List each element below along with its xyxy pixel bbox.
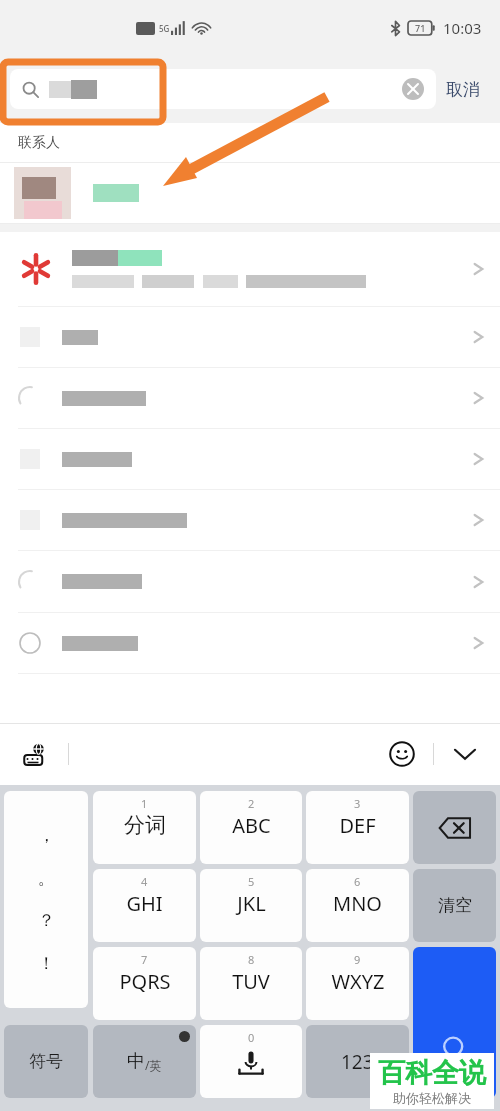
button[interactable]: 9 — [306, 947, 409, 1020]
staticText: /英 — [145, 1057, 162, 1073]
button[interactable] — [0, 232, 500, 306]
button[interactable] — [0, 163, 500, 223]
button[interactable]: Search — [413, 947, 496, 1098]
button[interactable]: 4 — [93, 869, 196, 942]
button[interactable]: 0 — [200, 1025, 302, 1098]
staticText: 2 — [248, 796, 255, 811]
staticText: TUV — [232, 968, 270, 995]
button[interactable]: 符号 — [4, 1025, 88, 1098]
button[interactable]: 8 — [200, 947, 302, 1020]
button[interactable]: Hide keyboard — [448, 737, 482, 771]
button[interactable] — [0, 429, 500, 489]
staticText: 清空 — [438, 895, 472, 916]
staticText: PQRS — [119, 968, 171, 995]
staticText: 百科全说 — [378, 1056, 486, 1090]
button[interactable] — [0, 307, 500, 367]
staticText: 符号 — [29, 1051, 63, 1072]
staticText: 8 — [248, 952, 255, 967]
staticText: 联系人 — [18, 134, 60, 152]
button[interactable]: Clear — [402, 78, 424, 100]
button[interactable]: 清空 — [413, 869, 496, 942]
button[interactable]: 123 — [306, 1025, 409, 1098]
staticText: 71 — [415, 22, 426, 34]
staticText: MNO — [333, 890, 382, 917]
staticText: ？ — [38, 910, 55, 931]
staticText: 助你轻松解决 — [393, 1090, 471, 1106]
staticText: 取消 — [446, 79, 480, 100]
staticText: 中 — [127, 1050, 145, 1073]
staticText: JKL — [237, 890, 266, 917]
button[interactable]: Input method — [18, 737, 52, 771]
button[interactable] — [0, 551, 500, 612]
button[interactable]: Clear — [10, 69, 436, 109]
staticText: 3 — [354, 796, 361, 811]
button[interactable] — [0, 368, 500, 428]
staticText: ABC — [232, 812, 271, 839]
button[interactable]: 2 — [200, 791, 302, 864]
button[interactable]: 7 — [93, 947, 196, 1020]
staticText: 0 — [248, 1030, 255, 1045]
staticText: 。 — [38, 868, 55, 889]
button[interactable] — [0, 613, 500, 673]
staticText: 1 — [141, 796, 148, 811]
staticText: ， — [38, 825, 55, 846]
staticText: 4 — [141, 874, 148, 889]
button[interactable]: 3 — [306, 791, 409, 864]
staticText: 9 — [354, 952, 361, 967]
staticText: 6 — [354, 874, 361, 889]
staticText: ！ — [38, 953, 55, 974]
button[interactable]: ， — [4, 791, 88, 1008]
button[interactable]: 6 — [306, 869, 409, 942]
staticText: 5 — [248, 874, 255, 889]
button[interactable]: 中 — [93, 1025, 196, 1098]
staticText: WXYZ — [331, 968, 385, 995]
staticText: 分词 — [124, 812, 166, 838]
button[interactable] — [0, 490, 500, 550]
staticText: 10:03 — [443, 18, 482, 38]
staticText: 123 — [341, 1049, 374, 1075]
button[interactable]: 取消 — [436, 73, 490, 106]
button[interactable]: Emoji — [385, 737, 419, 771]
button[interactable]: Backspace — [413, 791, 496, 864]
button[interactable]: 5 — [200, 869, 302, 942]
staticText: DEF — [339, 812, 376, 839]
staticText: GHI — [126, 890, 163, 917]
staticText: 5G — [159, 23, 170, 34]
button[interactable]: 1 — [93, 791, 196, 864]
staticText: 7 — [141, 952, 148, 967]
